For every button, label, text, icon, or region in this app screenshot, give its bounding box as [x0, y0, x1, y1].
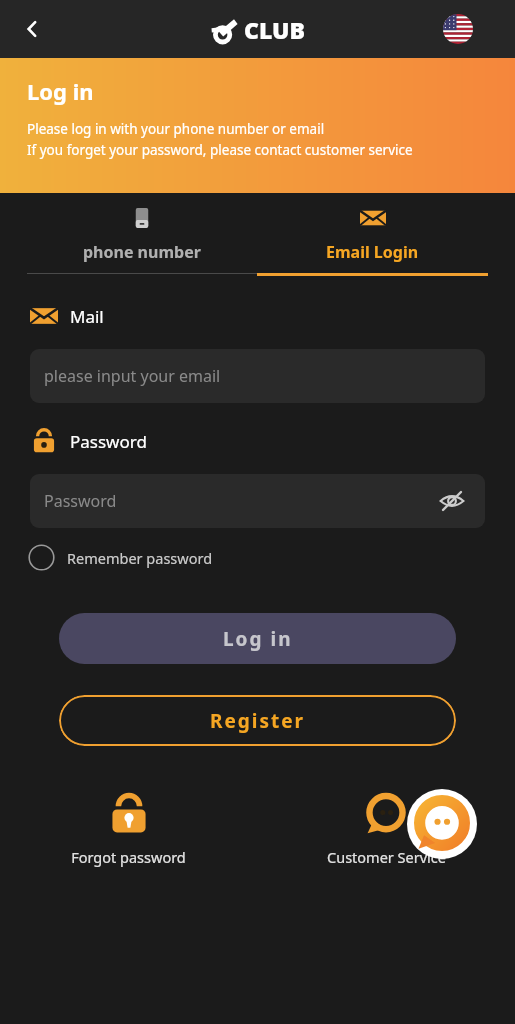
staticText: Password [44, 490, 117, 512]
staticText: please input your email [44, 365, 221, 387]
button[interactable]: phone number [27, 193, 257, 274]
staticText: Please log in with your phone number or … [27, 120, 325, 138]
staticText: Log in [27, 76, 94, 106]
button[interactable]: Forgot password [0, 791, 257, 867]
staticText: Log in [223, 626, 293, 652]
staticText: CLUB [244, 14, 305, 45]
staticText: Remember password [67, 548, 213, 568]
staticText: Password [70, 430, 147, 453]
staticText: phone number [83, 241, 201, 263]
staticText: Register [210, 708, 306, 734]
button[interactable]: Password [30, 474, 485, 528]
button[interactable]: Back [12, 9, 52, 49]
button[interactable]: Email Login [257, 193, 488, 276]
staticText: Customer Service [327, 847, 446, 867]
staticText: Email Login [326, 241, 419, 263]
staticText: If you forget your password, please cont… [27, 141, 413, 159]
button[interactable]: Customer Service [257, 791, 515, 867]
staticText: Mail [70, 305, 104, 328]
staticText: Forgot password [71, 847, 186, 867]
button[interactable]: Log in [59, 613, 456, 664]
button[interactable]: Chat support [407, 789, 477, 859]
button[interactable]: please input your email [30, 349, 485, 403]
button[interactable]: Remember password [28, 544, 213, 571]
button[interactable]: Show password [437, 486, 467, 516]
button[interactable]: Language [443, 14, 473, 44]
button[interactable]: Register [59, 695, 456, 746]
